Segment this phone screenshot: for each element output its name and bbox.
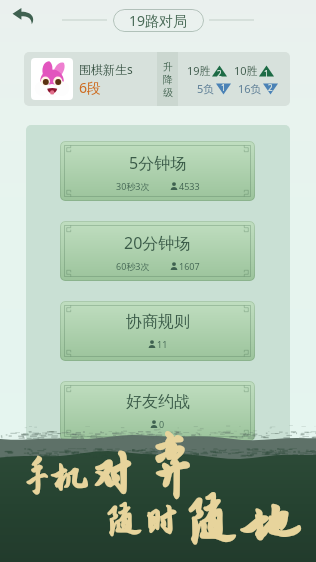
- staticText: 1607: [179, 260, 200, 272]
- button[interactable]: 19路对局: [113, 9, 204, 32]
- staticText: 时: [143, 501, 179, 540]
- staticText: 5分钟场: [129, 152, 187, 174]
- staticText: 6段: [79, 78, 102, 97]
- staticText: 11: [157, 338, 168, 350]
- staticText: 16负: [238, 81, 262, 96]
- staticText: 19路对局: [129, 11, 188, 30]
- staticText: 手: [22, 455, 51, 500]
- staticText: 弈: [150, 432, 193, 504]
- staticText: 1: [264, 68, 269, 79]
- button[interactable]: 围棋新生s: [24, 52, 290, 106]
- button[interactable]: 好友约战: [60, 381, 255, 441]
- staticText: 围棋新生s: [79, 61, 133, 77]
- staticText: 5负: [197, 81, 215, 96]
- staticText: 10胜: [234, 63, 258, 78]
- staticText: 0: [159, 418, 165, 430]
- button[interactable]: 5分钟场: [60, 141, 255, 201]
- staticText: 20分钟场: [124, 232, 191, 254]
- staticText: 随: [188, 490, 235, 552]
- button[interactable]: 协商规则: [60, 301, 255, 361]
- staticText: 对: [89, 447, 136, 501]
- button[interactable]: Back: [7, 1, 41, 35]
- staticText: 1: [221, 82, 226, 93]
- staticText: 好友约战: [126, 392, 190, 412]
- staticText: 4533: [179, 180, 200, 192]
- button[interactable]: 20分钟场: [60, 221, 255, 281]
- staticText: 机: [49, 458, 89, 498]
- staticText: 随: [107, 500, 140, 540]
- staticText: 升: [163, 60, 173, 73]
- staticText: 级: [163, 86, 173, 99]
- staticText: 地: [243, 496, 296, 553]
- staticText: 协商规则: [126, 312, 190, 332]
- staticText: 降: [163, 73, 173, 86]
- staticText: 30秒3次: [116, 180, 150, 192]
- staticText: 19胜: [187, 63, 211, 78]
- staticText: 2: [217, 68, 222, 79]
- staticText: 60秒3次: [116, 260, 150, 272]
- staticText: 2: [268, 82, 273, 93]
